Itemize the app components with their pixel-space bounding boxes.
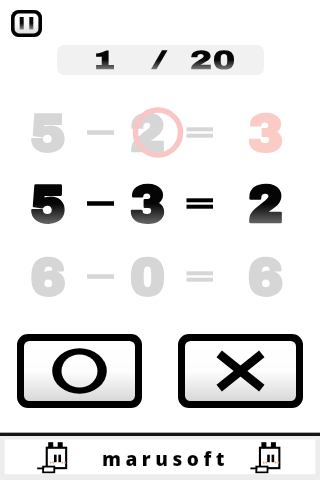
button[interactable]: Pause: [11, 10, 42, 37]
button[interactable]: Correct: [17, 334, 142, 408]
staticText: marusoft: [102, 446, 229, 472]
button[interactable]: Wrong: [178, 334, 303, 408]
button[interactable]: marusoft advertisement: [0, 432, 320, 480]
